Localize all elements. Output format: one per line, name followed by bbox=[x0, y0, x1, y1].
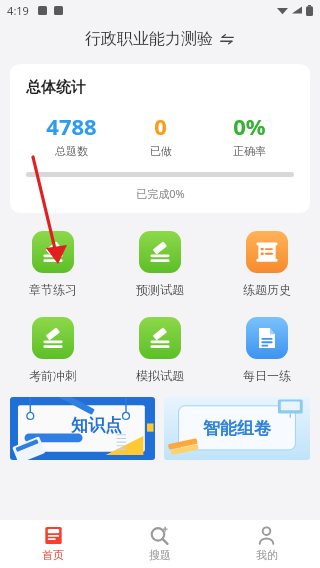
button[interactable]: 模拟试题 bbox=[106, 313, 213, 387]
staticText: 总体统计 bbox=[26, 78, 86, 97]
button[interactable]: 预测试题 bbox=[106, 227, 213, 301]
staticText: 预测试题 bbox=[136, 282, 184, 297]
staticText: 4788 bbox=[46, 111, 97, 141]
staticText: 0% bbox=[233, 111, 266, 141]
staticText: 0 bbox=[154, 111, 167, 141]
button[interactable]: 搜题 bbox=[106, 520, 213, 568]
staticText: 每日一练 bbox=[243, 368, 291, 383]
button[interactable]: 练题历史 bbox=[213, 227, 320, 301]
button[interactable]: 知识点 bbox=[10, 397, 155, 460]
button[interactable]: 智能组卷 bbox=[164, 397, 310, 460]
staticText: 行政职业能力测验 bbox=[85, 29, 213, 49]
staticText: 4:19 bbox=[7, 3, 29, 18]
button[interactable]: 总体统计 bbox=[10, 64, 310, 213]
button[interactable]: 首页 bbox=[0, 520, 106, 568]
staticText: 正确率 bbox=[233, 144, 266, 158]
staticText: 已完成0% bbox=[136, 186, 185, 201]
button[interactable]: 我的 bbox=[213, 520, 320, 568]
staticText: 首页 bbox=[42, 548, 64, 562]
staticText: 已做 bbox=[150, 144, 172, 158]
staticText: 智能组卷 bbox=[203, 418, 271, 439]
staticText: 考前冲刺 bbox=[29, 368, 77, 383]
button[interactable]: 每日一练 bbox=[213, 313, 320, 387]
button[interactable]: 考前冲刺 bbox=[0, 313, 106, 387]
button[interactable]: 切换科目 bbox=[219, 31, 235, 47]
staticText: 章节练习 bbox=[29, 282, 77, 297]
staticText: 知识点 bbox=[71, 415, 122, 436]
staticText: 我的 bbox=[256, 548, 278, 562]
staticText: 总题数 bbox=[55, 144, 88, 158]
staticText: 练题历史 bbox=[243, 282, 291, 297]
staticText: 模拟试题 bbox=[136, 368, 184, 383]
button[interactable]: 章节练习 bbox=[0, 227, 106, 301]
staticText: 搜题 bbox=[149, 548, 171, 562]
